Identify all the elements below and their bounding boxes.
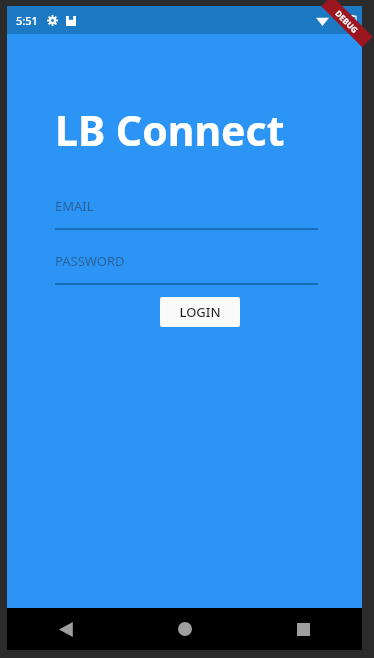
button[interactable]: Back (7, 608, 126, 650)
staticText: PASSWORD (55, 252, 125, 270)
button[interactable]: Recent apps (244, 608, 362, 650)
staticText: LOGIN (179, 303, 221, 321)
staticText: 5:51 (16, 13, 38, 28)
staticText: EMAIL (55, 197, 94, 215)
button[interactable]: EMAIL (55, 197, 318, 230)
button[interactable]: PASSWORD (55, 252, 318, 285)
button[interactable]: Home (126, 608, 244, 650)
staticText: LB Connect (55, 102, 285, 158)
button[interactable]: LOGIN (160, 297, 240, 327)
staticText: DEBUG (333, 8, 361, 35)
